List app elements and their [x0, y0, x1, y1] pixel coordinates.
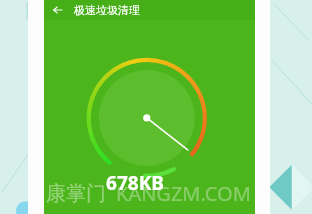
- button[interactable]: Back: [50, 2, 66, 18]
- staticText: 康掌门: [46, 181, 106, 206]
- staticText: 极速垃圾清理: [74, 3, 140, 17]
- staticText: KANGZM.COM: [116, 180, 251, 207]
- staticText: 678KB: [106, 170, 164, 196]
- button[interactable]: Junk scan gauge: [44, 20, 255, 214]
